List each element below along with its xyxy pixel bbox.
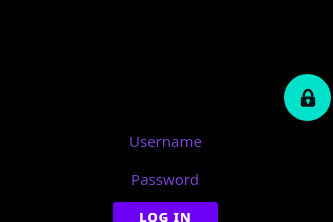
- staticText: LOG IN: [139, 208, 192, 222]
- staticText: Password: [131, 169, 199, 189]
- button[interactable]: LOG IN: [113, 202, 218, 222]
- button[interactable]: Password: [105, 169, 225, 189]
- staticText: Username: [129, 131, 202, 151]
- button[interactable]: Username: [105, 131, 225, 151]
- button[interactable]: Lock: [284, 74, 331, 121]
